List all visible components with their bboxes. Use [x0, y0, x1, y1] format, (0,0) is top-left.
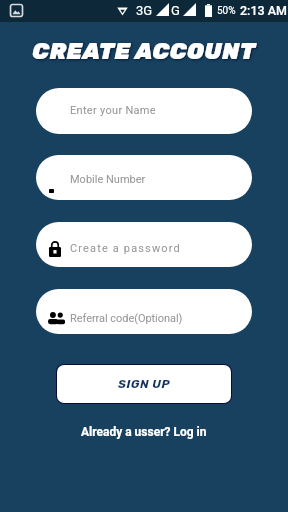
staticText: CREATE ACCOUNT	[0, 37, 288, 64]
button[interactable]: Create a password	[36, 222, 252, 267]
staticText: Referral code(Optional)	[70, 312, 183, 325]
staticText: Enter your Name	[70, 104, 156, 117]
button[interactable]: Already a usser? Log in	[75, 422, 213, 442]
button[interactable]: Enter your Name	[36, 88, 252, 134]
staticText: SIGN UP	[118, 377, 171, 391]
staticText: 2:13 AM	[240, 3, 287, 18]
staticText: 3G	[136, 3, 153, 18]
staticText: Mobile Number	[70, 173, 146, 186]
button[interactable]: SIGN UP	[57, 365, 231, 403]
button[interactable]: Mobile Number	[36, 155, 252, 200]
staticText: Create a password	[70, 242, 181, 255]
staticText: G	[171, 3, 180, 18]
staticText: Already a usser? Log in	[81, 425, 207, 439]
button[interactable]: Referral code(Optional)	[36, 289, 252, 334]
staticText: 50%	[217, 5, 236, 17]
